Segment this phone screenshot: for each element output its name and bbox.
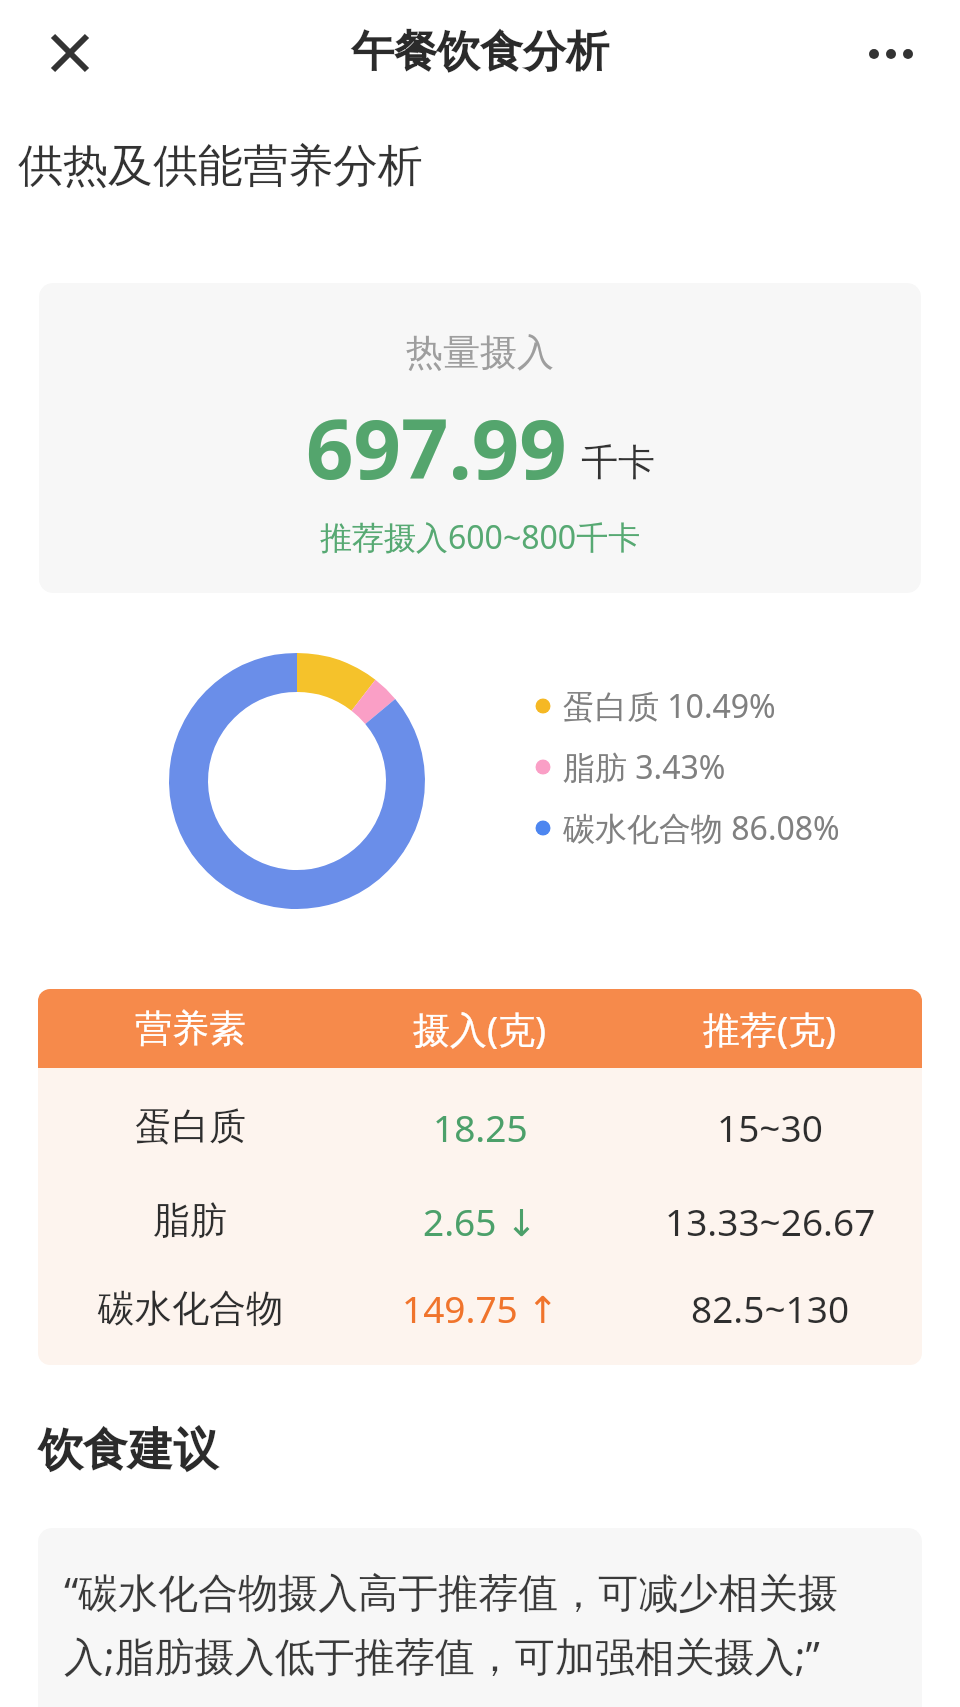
staticText: 午餐饮食分析	[351, 25, 609, 79]
staticText: 2.65 ↓	[423, 1196, 538, 1246]
staticText: 82.5~130	[691, 1283, 850, 1333]
staticText: 碳水化合物	[98, 1285, 283, 1332]
staticText: 13.33~26.67	[665, 1196, 876, 1246]
staticText: 摄入(克)	[413, 1003, 547, 1054]
staticText: 蛋白质	[135, 1103, 246, 1150]
staticText: 营养素	[135, 1005, 246, 1052]
staticText: 18.25	[433, 1102, 528, 1152]
staticText: 149.75 ↑	[402, 1283, 559, 1333]
button[interactable]	[846, 24, 936, 84]
staticText: 千卡	[581, 439, 655, 486]
staticText: 供热及供能营养分析	[18, 138, 423, 195]
staticText: 15~30	[717, 1102, 823, 1152]
staticText: 饮食建议	[38, 1422, 218, 1479]
staticText: 蛋白质 10.49%	[563, 684, 776, 728]
staticText: 热量摄入	[406, 329, 554, 376]
staticText: “碳水化合物摄入高于推荐值，可减少相关摄 入;脂肪摄入低于推荐值，可加强相关摄入…	[64, 1564, 839, 1683]
staticText: 推荐(克)	[703, 1003, 837, 1054]
staticText: 碳水化合物 86.08%	[563, 806, 840, 850]
staticText: 推荐摄入600~800千卡	[320, 515, 641, 559]
staticText: 脂肪	[153, 1197, 227, 1244]
button[interactable]	[30, 13, 110, 93]
staticText: 697.99	[306, 390, 567, 503]
staticText: 脂肪 3.43%	[563, 745, 726, 789]
